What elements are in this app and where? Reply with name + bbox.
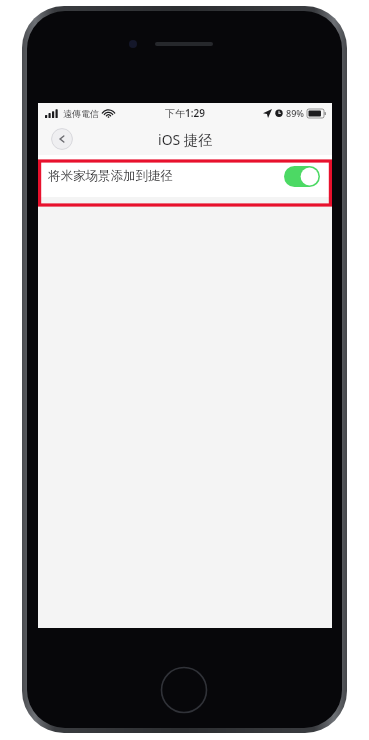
staticText: 遠傳電信: [63, 108, 99, 119]
button[interactable]: Add Mi Home scenes to Shortcuts, on: [284, 166, 320, 187]
other: Home: [160, 666, 208, 714]
staticText: 下午1:29: [165, 106, 205, 120]
staticText: iOS 捷径: [158, 130, 212, 149]
staticText: 将米家场景添加到捷径: [48, 168, 173, 184]
button[interactable]: 将米家场景添加到捷径: [38, 155, 332, 197]
button[interactable]: Back: [51, 128, 73, 150]
staticText: 89%: [286, 107, 304, 119]
